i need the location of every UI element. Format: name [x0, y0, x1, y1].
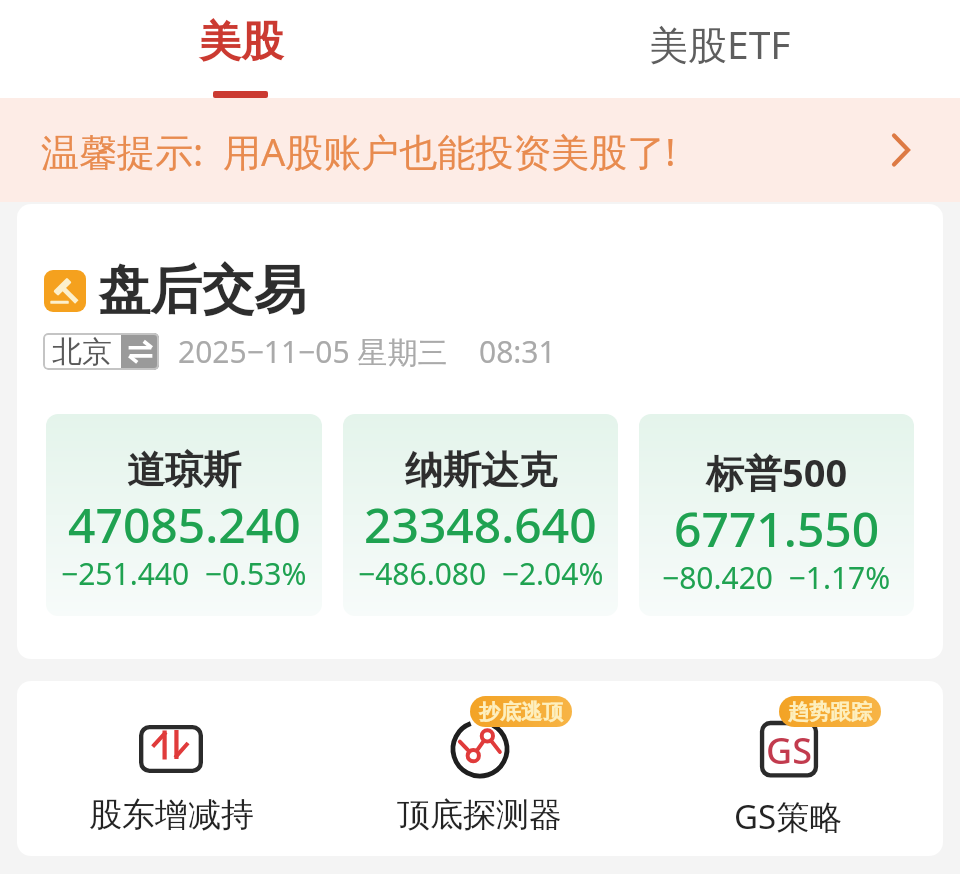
button[interactable]: 北京 — [43, 333, 159, 370]
staticText: 趋势跟踪 — [788, 699, 872, 725]
staticText: −80.420 −1.17% — [662, 557, 891, 598]
button[interactable]: 顶底探测器 — [325, 681, 634, 836]
staticText: GS — [766, 726, 812, 775]
other: GS策略 — [757, 717, 821, 781]
staticText: 纳斯达克 — [405, 446, 557, 494]
button[interactable]: 股东增减持 — [17, 681, 325, 836]
staticText: 47085.240 — [68, 492, 301, 557]
staticText: −251.440 −0.53% — [61, 553, 307, 594]
staticText: 顶底探测器 — [397, 794, 562, 836]
button[interactable]: 美股ETF — [643, 0, 803, 98]
other: 顶底探测器 — [448, 717, 512, 781]
staticText: 温馨提示: 用A股账户也能投资美股了! — [41, 125, 676, 177]
staticText: −486.080 −2.04% — [358, 553, 604, 594]
staticText: 北京 — [52, 333, 112, 370]
staticText: GS策略 — [734, 794, 843, 839]
staticText: 美股 — [199, 16, 283, 69]
staticText: 道琼斯 — [127, 446, 241, 494]
button[interactable]: GS策略 — [634, 681, 943, 839]
other: 股东增减持 — [139, 717, 203, 781]
button[interactable]: 道琼斯 — [46, 414, 322, 616]
staticText: 23348.640 — [364, 492, 597, 557]
staticText: 美股ETF — [649, 17, 791, 70]
button[interactable]: 美股 — [160, 0, 320, 98]
staticText: 6771.550 — [674, 496, 880, 561]
staticText: 抄底逃顶 — [479, 699, 563, 725]
staticText: 盘后交易 — [98, 258, 306, 324]
staticText: 股东增减持 — [89, 794, 254, 836]
staticText: 08:31 — [479, 331, 556, 372]
button[interactable]: 纳斯达克 — [343, 414, 618, 616]
staticText: 2025−11−05 星期三 — [178, 331, 448, 372]
button[interactable]: 标普500 — [639, 414, 914, 616]
staticText: 标普500 — [706, 446, 848, 498]
button[interactable]: 温馨提示: 用A股账户也能投资美股了! — [0, 98, 960, 202]
